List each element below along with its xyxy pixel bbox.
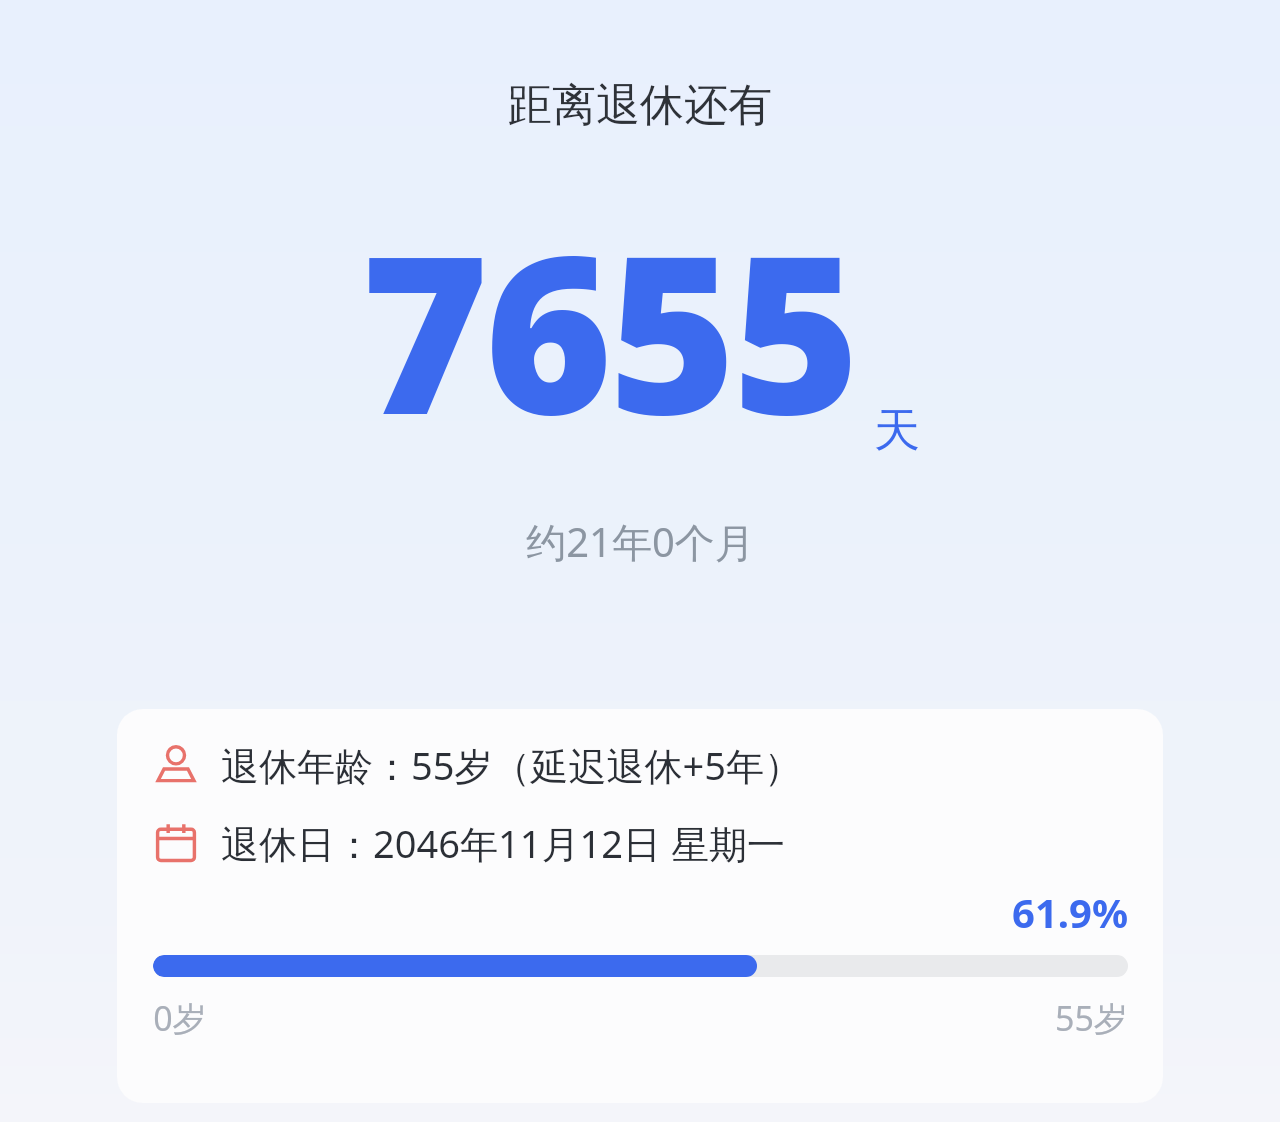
other: Retirement date — [153, 820, 199, 866]
staticText: 0岁 — [153, 995, 207, 1041]
staticText: 55岁 — [1055, 995, 1128, 1041]
button[interactable]: Retirement age — [117, 709, 1163, 1103]
staticText: 7655 — [361, 181, 856, 478]
staticText: 61.9% — [1012, 885, 1128, 939]
staticText: 退休年龄：55岁（延迟退休+5年） — [221, 739, 802, 791]
staticText: 距离退休还有 — [508, 78, 772, 133]
staticText: 退休日：2046年11月12日 星期一 — [221, 817, 785, 869]
staticText: 天 — [874, 402, 920, 460]
staticText: 约21年0个月 — [526, 514, 755, 569]
other: Retirement age — [153, 742, 199, 788]
